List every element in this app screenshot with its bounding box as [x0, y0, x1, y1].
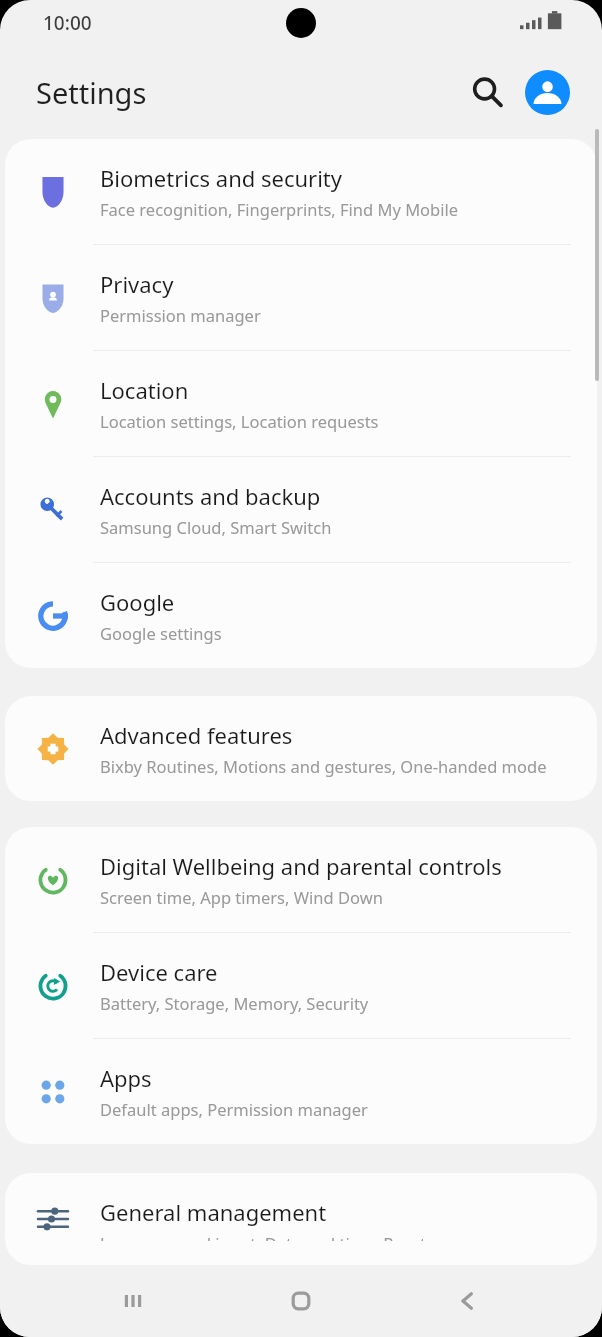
staticText: General management	[100, 1197, 327, 1227]
staticText: Screen time, App timers, Wind Down	[100, 886, 383, 908]
button[interactable]: Account	[525, 70, 570, 115]
staticText: Biometrics and security	[100, 163, 343, 193]
button[interactable]: Google	[5, 563, 597, 668]
button[interactable]: Recent apps	[98, 1266, 168, 1336]
button[interactable]: Privacy	[5, 245, 597, 350]
staticText: Bixby Routines, Motions and gestures, On…	[100, 755, 547, 777]
button[interactable]: Back	[434, 1266, 504, 1336]
button[interactable]: Search	[462, 67, 512, 117]
button[interactable]: Device care	[5, 933, 597, 1038]
staticText: Settings	[36, 73, 147, 112]
staticText: Google	[100, 587, 175, 617]
staticText: Default apps, Permission manager	[100, 1098, 368, 1120]
staticText: Battery, Storage, Memory, Security	[100, 992, 369, 1014]
staticText: Digital Wellbeing and parental controls	[100, 851, 502, 881]
staticText: Permission manager	[100, 304, 261, 326]
button[interactable]: General management	[5, 1173, 597, 1265]
staticText: Samsung Cloud, Smart Switch	[100, 516, 332, 538]
button[interactable]: Apps	[5, 1039, 597, 1144]
staticText: Language and input, Date and time, Reset	[100, 1232, 426, 1241]
button[interactable]: Biometrics and security	[5, 139, 597, 244]
button[interactable]: Accounts and backup	[5, 457, 597, 562]
staticText: 10:00	[43, 10, 92, 36]
staticText: Location	[100, 375, 189, 405]
staticText: Accounts and backup	[100, 481, 321, 511]
staticText: Apps	[100, 1063, 152, 1093]
button[interactable]: Advanced features	[5, 696, 597, 801]
button[interactable]: Home	[266, 1266, 336, 1336]
button[interactable]: Location	[5, 351, 597, 456]
button[interactable]: Digital Wellbeing and parental controls	[5, 827, 597, 932]
staticText: Privacy	[100, 269, 174, 299]
staticText: Advanced features	[100, 720, 293, 750]
staticText: Device care	[100, 957, 218, 987]
staticText: Face recognition, Fingerprints, Find My …	[100, 198, 459, 220]
staticText: Location settings, Location requests	[100, 410, 379, 432]
staticText: Google settings	[100, 622, 222, 644]
